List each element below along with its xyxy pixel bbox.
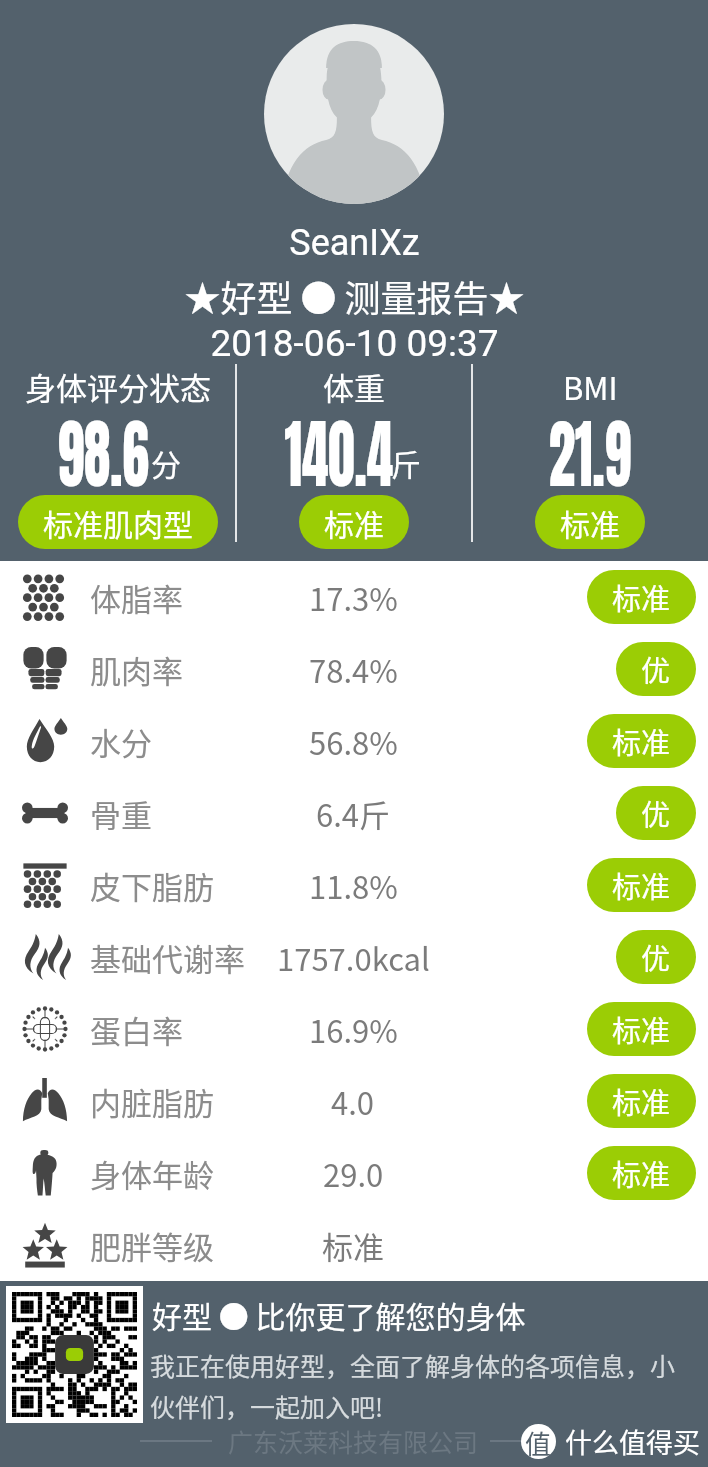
- staticText: 78.4%: [309, 647, 398, 692]
- button[interactable]: 肥胖等级: [0, 1209, 708, 1281]
- staticText: 体重: [323, 364, 385, 409]
- staticText: 29.0: [323, 1151, 384, 1196]
- staticText: 6.4斤: [316, 791, 391, 836]
- staticText: 值: [525, 1424, 552, 1459]
- staticText: 斤: [391, 441, 421, 484]
- staticText: 我正在使用好型，全面了解身体的各项信息，小 伙伴们，一起加入吧!: [150, 1347, 676, 1424]
- staticText: 标准: [322, 1223, 384, 1268]
- staticText: SeanIXz: [289, 222, 420, 264]
- button[interactable]: 标准: [299, 495, 409, 549]
- staticText: 2018-06-10 09:37: [210, 322, 499, 365]
- staticText: 优: [641, 648, 671, 690]
- button[interactable]: 体脂率: [0, 561, 708, 633]
- button[interactable]: 水分: [0, 705, 708, 777]
- staticText: 标准肌肉型: [43, 501, 193, 544]
- staticText: 56.8%: [309, 719, 398, 764]
- staticText: 标准: [612, 720, 671, 762]
- button[interactable]: 肌肉率: [0, 633, 708, 705]
- staticText: 肌肉率: [90, 647, 183, 692]
- staticText: 优: [641, 936, 671, 978]
- staticText: 肥胖等级: [90, 1223, 214, 1268]
- staticText: 标准: [612, 1080, 671, 1122]
- staticText: BMI: [563, 364, 618, 409]
- staticText: 身体评分状态: [25, 364, 211, 409]
- staticText: 140.4: [284, 397, 394, 511]
- staticText: 4.0: [331, 1079, 375, 1124]
- staticText: 优: [641, 792, 671, 834]
- staticText: 17.3%: [309, 575, 398, 620]
- staticText: 基础代谢率: [90, 935, 245, 980]
- staticText: 标准: [560, 501, 620, 544]
- staticText: 16.9%: [309, 1007, 398, 1052]
- staticText: 标准: [612, 864, 671, 906]
- staticText: 98.6: [58, 397, 149, 511]
- button[interactable]: 标准: [587, 1146, 696, 1200]
- staticText: 21.9: [549, 397, 631, 511]
- button[interactable]: 内脏脂肪: [0, 1065, 708, 1137]
- staticText: 1757.0kcal: [277, 935, 430, 980]
- staticText: 什么值得买: [565, 1422, 700, 1461]
- button[interactable]: 标准肌肉型: [18, 495, 218, 549]
- staticText: 体脂率: [90, 575, 183, 620]
- staticText: 皮下脂肪: [90, 863, 214, 908]
- staticText: ★好型 ● 测量报告★: [184, 270, 525, 322]
- button[interactable]: 优: [616, 786, 696, 840]
- staticText: 好型 ● 比你更了解您的身体: [152, 1293, 526, 1336]
- staticText: 广东沃莱科技有限公司: [228, 1423, 479, 1459]
- staticText: 标准: [612, 1008, 671, 1050]
- button[interactable]: 骨重: [0, 777, 708, 849]
- button[interactable]: 标准: [587, 714, 696, 768]
- button[interactable]: 优: [616, 930, 696, 984]
- button[interactable]: 标准: [535, 495, 645, 549]
- button[interactable]: 蛋白率: [0, 993, 708, 1065]
- button[interactable]: 优: [616, 642, 696, 696]
- staticText: 标准: [612, 576, 671, 618]
- button[interactable]: 身体年龄: [0, 1137, 708, 1209]
- button[interactable]: 标准: [587, 1074, 696, 1128]
- staticText: 身体年龄: [90, 1151, 214, 1196]
- staticText: 分: [151, 441, 181, 484]
- button[interactable]: 标准: [587, 858, 696, 912]
- staticText: 11.8%: [309, 863, 398, 908]
- staticText: 标准: [324, 501, 384, 544]
- button[interactable]: 皮下脂肪: [0, 849, 708, 921]
- staticText: 标准: [612, 1152, 671, 1194]
- button[interactable]: 基础代谢率: [0, 921, 708, 993]
- button[interactable]: 标准: [587, 1002, 696, 1056]
- staticText: 骨重: [90, 791, 152, 836]
- staticText: 水分: [90, 719, 152, 764]
- staticText: 内脏脂肪: [90, 1079, 214, 1124]
- staticText: 蛋白率: [90, 1007, 183, 1052]
- button[interactable]: 标准: [587, 570, 696, 624]
